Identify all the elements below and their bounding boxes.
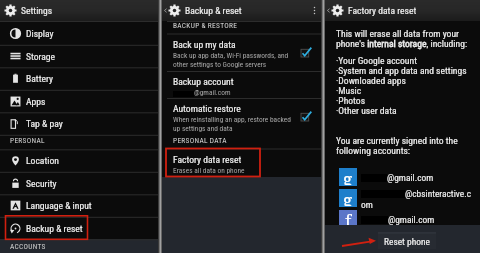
button[interactable]: f bbox=[339, 210, 413, 225]
staticText: PERSONAL DATA bbox=[173, 136, 227, 145]
staticText: Back up my data bbox=[173, 39, 236, 50]
staticText: Language & input bbox=[26, 200, 92, 211]
button[interactable]: Backup account bbox=[162, 72, 321, 99]
staticText: Factory data reset bbox=[348, 5, 417, 16]
staticText: Security bbox=[26, 178, 57, 189]
button[interactable]: g bbox=[339, 189, 449, 207]
staticText: Apps bbox=[26, 96, 46, 107]
staticText: g bbox=[343, 188, 353, 206]
button[interactable]: Factory data reset bbox=[162, 150, 321, 176]
staticText: g bbox=[343, 167, 353, 185]
staticText: Reset phone bbox=[384, 236, 430, 247]
staticText: You are currently signed into the follow… bbox=[336, 135, 458, 156]
button[interactable]: More options bbox=[308, 0, 321, 21]
button[interactable]: Backup & reset bbox=[0, 217, 158, 240]
staticText: @gmail.com bbox=[387, 172, 434, 183]
button[interactable]: g bbox=[339, 168, 412, 186]
button[interactable]: Battery bbox=[0, 67, 158, 90]
staticText: Backup & reset bbox=[26, 223, 83, 234]
button[interactable]: Display bbox=[0, 22, 158, 45]
staticText: This will erase all data from your phone… bbox=[336, 28, 468, 49]
staticText: Tap & pay bbox=[26, 118, 63, 129]
button[interactable]: Tap & pay bbox=[0, 112, 158, 135]
staticText: Backup account bbox=[173, 76, 234, 87]
staticText: Factory data reset bbox=[173, 154, 242, 165]
button[interactable]: Navigate up bbox=[325, 0, 331, 21]
staticText: Automatic restore bbox=[173, 103, 241, 114]
staticText: ACCOUNTS bbox=[10, 242, 46, 251]
staticText: Battery bbox=[26, 73, 54, 84]
staticText: Back up app data, Wi-Fi passwords, and o… bbox=[173, 51, 289, 69]
staticText: Storage bbox=[26, 51, 56, 62]
staticText: Backup & reset bbox=[185, 5, 242, 16]
staticText: PERSONAL bbox=[10, 136, 45, 145]
button[interactable]: Navigate up bbox=[162, 0, 168, 21]
staticText: f bbox=[345, 209, 352, 225]
button[interactable]: Location bbox=[0, 149, 158, 172]
staticText: @cbsinteractive.c bbox=[405, 188, 471, 199]
button[interactable]: Storage bbox=[0, 45, 158, 68]
button[interactable]: Apps bbox=[0, 90, 158, 113]
staticText: BACKUP & RESTORE bbox=[173, 21, 238, 30]
staticText: ·Your Google account ·System and app dat… bbox=[336, 55, 467, 116]
staticText: om bbox=[361, 199, 373, 210]
staticText: Settings bbox=[21, 5, 53, 16]
staticText: When reinstalling an app, restore backed… bbox=[173, 115, 291, 133]
staticText: @gmail.com bbox=[388, 214, 435, 225]
staticText: Erases all data on phone bbox=[173, 166, 245, 175]
staticText: Location bbox=[26, 155, 59, 166]
button[interactable]: Language & input bbox=[0, 194, 158, 217]
staticText: Display bbox=[26, 28, 54, 39]
button[interactable]: Reset phone bbox=[378, 233, 436, 249]
button[interactable]: Security bbox=[0, 172, 158, 195]
staticText: @gmail.com bbox=[194, 88, 231, 97]
button[interactable]: Automatic restore bbox=[162, 99, 321, 134]
button[interactable]: Back up my data bbox=[162, 35, 321, 72]
